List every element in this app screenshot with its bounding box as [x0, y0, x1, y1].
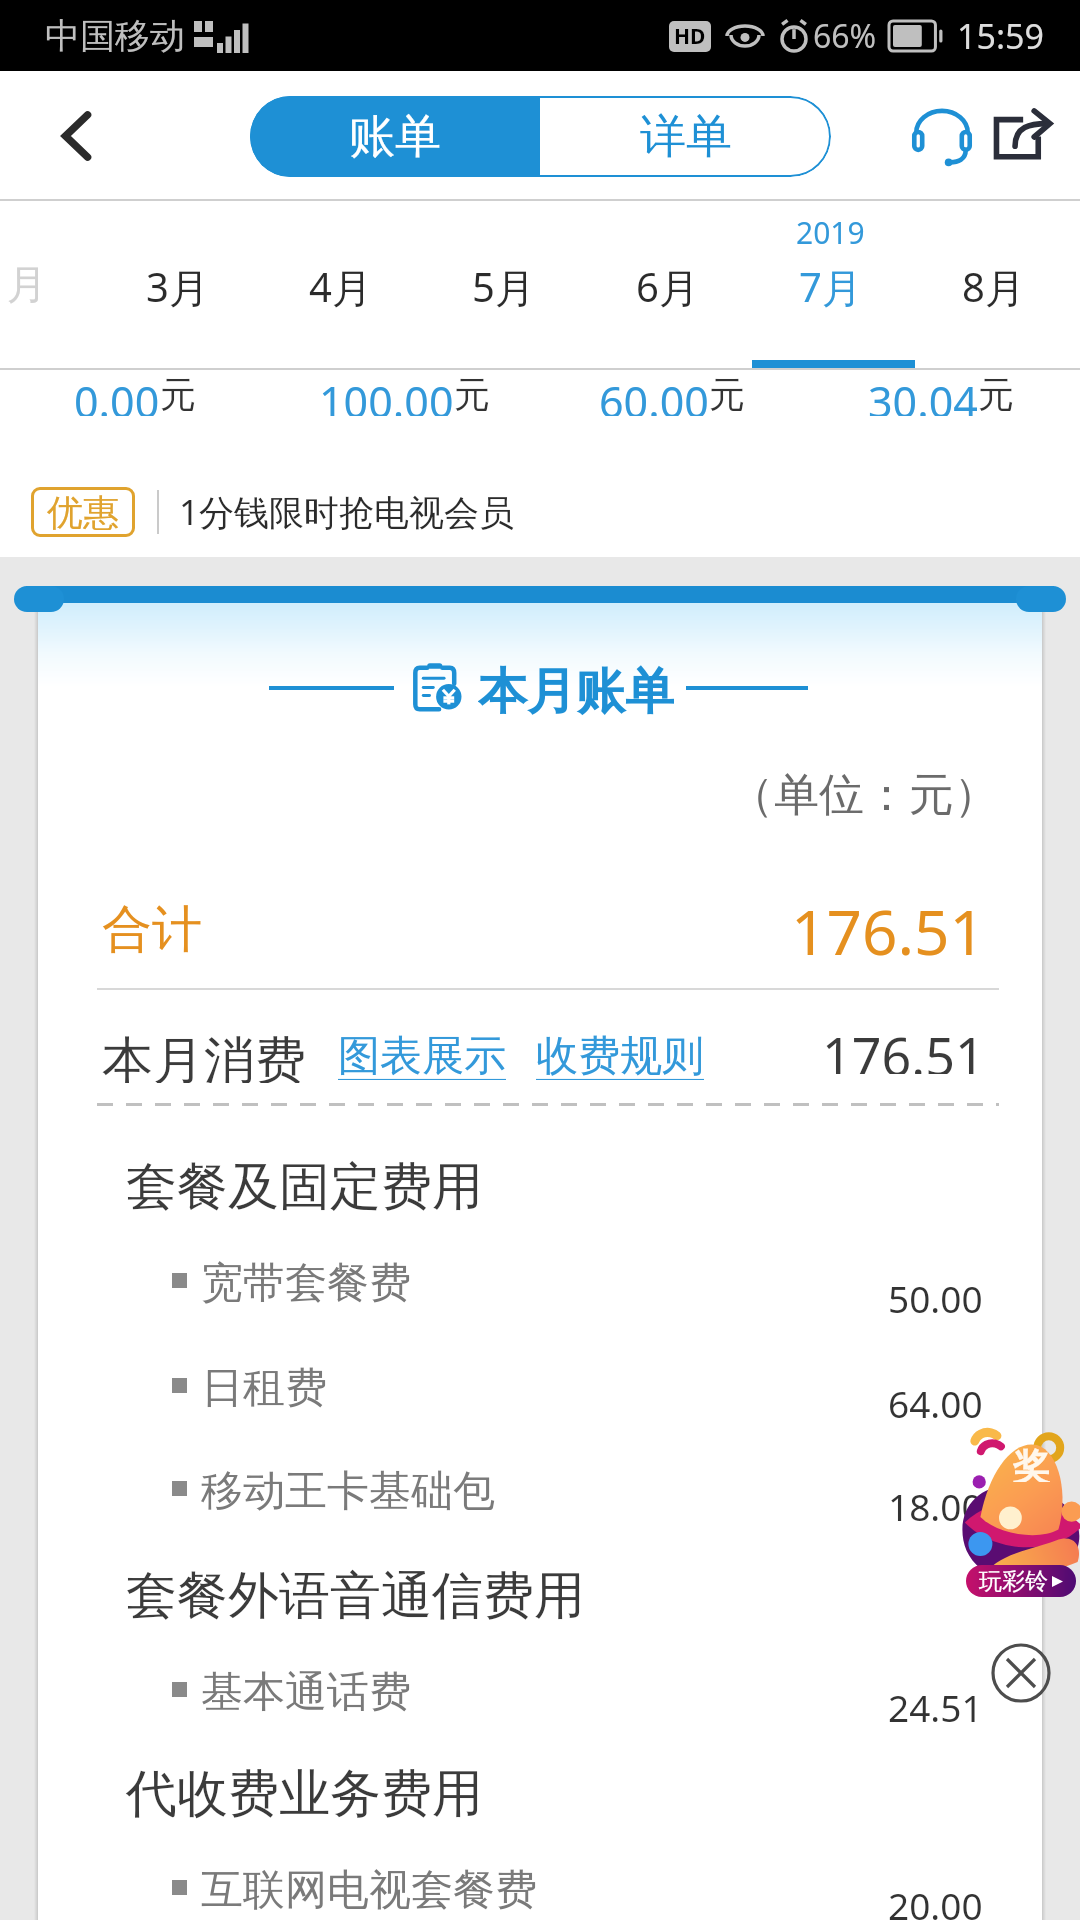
staticText: 100.00 [319, 372, 454, 416]
staticText: 本月消费 [102, 1029, 306, 1083]
button[interactable]: Back [35, 94, 119, 178]
button[interactable] [98, 1840, 982, 1920]
button[interactable] [98, 1642, 982, 1742]
staticText: 元 [160, 372, 196, 416]
staticText: 2019 [796, 212, 865, 253]
staticText: 6月 [636, 259, 699, 314]
button[interactable]: Customer service [900, 94, 984, 178]
button[interactable]: 优惠 [0, 472, 1080, 552]
staticText: 15:59 [957, 13, 1044, 59]
staticText: （单位：元） [729, 767, 999, 824]
staticText: 代收费业务费用 [126, 1762, 483, 1826]
staticText: 30.04 [868, 372, 978, 416]
staticText: 账单 [349, 108, 441, 166]
staticText: 宽带套餐费 [201, 1257, 411, 1310]
button[interactable]: 5月 [423, 259, 583, 359]
button[interactable]: 图表展示 [338, 1030, 506, 1080]
button[interactable]: 月 [0, 259, 107, 359]
staticText: 本月账单 [478, 661, 674, 717]
staticText: 4月 [309, 259, 372, 314]
button[interactable]: 100.00 [254, 372, 554, 416]
staticText: 7月 [799, 259, 862, 314]
staticText: 8月 [962, 259, 1025, 314]
staticText: 24.51 [888, 1682, 983, 1726]
staticText: 5月 [472, 259, 535, 314]
button[interactable]: 3月 [97, 259, 257, 359]
button[interactable]: 6月 [587, 259, 747, 359]
staticText: 互联网电视套餐费 [201, 1864, 537, 1917]
button[interactable]: 8月 [913, 259, 1073, 359]
staticText: 移动王卡基础包 [201, 1465, 495, 1518]
button[interactable]: 账单 [250, 96, 540, 177]
staticText: 玩彩铃 [979, 1567, 1048, 1596]
staticText: 176.51 [791, 889, 985, 961]
staticText: 图表展示 [338, 1030, 506, 1080]
staticText: 详单 [640, 108, 732, 166]
staticText: 奖 [1013, 1444, 1050, 1482]
staticText: 60.00 [599, 372, 709, 416]
staticText: 3月 [146, 259, 209, 314]
button[interactable]: 30.04 [791, 372, 1080, 416]
staticText: 176.51 [822, 1020, 985, 1074]
button[interactable]: 收费规则 [536, 1030, 704, 1080]
button[interactable] [98, 1338, 982, 1438]
staticText: 套餐及固定费用 [126, 1155, 483, 1219]
button[interactable]: 60.00 [522, 372, 822, 416]
staticText: 1分钱限时抢电视会员 [179, 488, 515, 536]
button[interactable]: 7月 [750, 259, 910, 359]
staticText: 月 [7, 259, 47, 309]
button[interactable]: Share [980, 95, 1064, 179]
button[interactable]: 4月 [260, 259, 420, 359]
staticText: 日租费 [201, 1362, 327, 1415]
staticText: 套餐外语音通信费用 [126, 1564, 585, 1628]
staticText: 元 [454, 372, 490, 416]
staticText: 20.00 [888, 1880, 983, 1920]
button[interactable]: Advertisement [960, 1418, 1080, 1598]
staticText: 元 [709, 372, 745, 416]
staticText: HD [674, 22, 706, 51]
button[interactable] [98, 1441, 982, 1541]
staticText: 元 [978, 372, 1014, 416]
staticText: 64.00 [888, 1378, 983, 1422]
staticText: 18.00 [888, 1481, 983, 1525]
button[interactable] [98, 1233, 982, 1333]
staticText: 50.00 [888, 1273, 983, 1317]
button[interactable]: 详单 [540, 96, 831, 177]
staticText: 收费规则 [536, 1030, 704, 1080]
staticText: 基本通话费 [201, 1666, 411, 1719]
staticText: 合计 [102, 898, 202, 960]
button[interactable]: Close advertisement [991, 1643, 1051, 1703]
button[interactable]: 0.00 [0, 372, 285, 416]
staticText: 中国移动 [45, 14, 185, 58]
staticText: 66% [813, 14, 877, 58]
staticText: 优惠 [47, 490, 119, 535]
staticText: 0.00 [74, 372, 160, 416]
